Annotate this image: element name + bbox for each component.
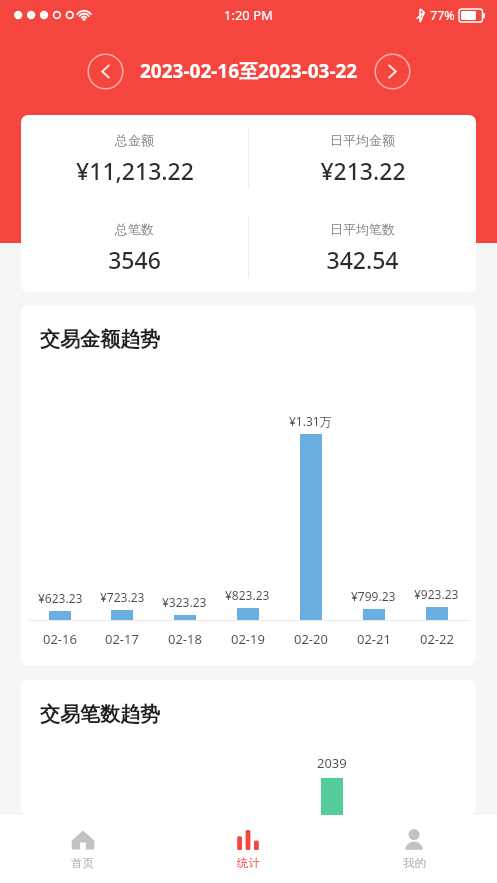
staticText: 总金额 [115,132,154,148]
staticText: 02-18 [168,630,202,648]
button[interactable]: 总金额 [21,115,248,203]
staticText: 02-22 [420,630,454,648]
staticText: 1:20 PM [224,6,273,24]
staticText: 日平均金额 [330,132,395,148]
staticText: ¥799.23 [351,588,396,604]
staticText: 总笔数 [115,221,154,237]
staticText: 交易笔数趋势 [40,702,160,727]
staticText: ¥213.22 [320,155,406,186]
staticText: 首页 [71,856,94,870]
staticText: 77% [430,7,455,24]
staticText: ¥1.31万 [289,413,332,429]
button[interactable]: 日平均笔数 [249,203,476,292]
button[interactable]: 首页 [0,815,165,883]
button[interactable]: 日平均金额 [249,115,476,203]
staticText: ¥323.23 [162,594,207,610]
button[interactable]: 统计 [165,815,331,883]
staticText: 02-16 [43,630,77,648]
staticText: 02-17 [105,630,139,648]
staticText: ¥623.23 [38,590,83,606]
staticText: 342.54 [326,244,399,275]
staticText: 02-19 [231,630,265,648]
staticText: 3546 [108,244,161,275]
staticText: ¥11,213.22 [76,155,194,186]
staticText: 我的 [403,856,426,870]
staticText: 2039 [317,754,347,772]
staticText: ¥923.23 [414,586,459,602]
staticText: ¥723.23 [100,589,145,605]
button[interactable]: Previous period [87,53,124,90]
button[interactable]: 总笔数 [21,203,248,292]
staticText: 统计 [237,856,260,870]
staticText: 02-20 [294,630,328,648]
staticText: 日平均笔数 [330,221,395,237]
button[interactable]: 我的 [331,815,497,883]
button[interactable]: 2023-02-16至2023-03-22 [140,58,358,84]
staticText: ¥823.23 [225,587,270,603]
button[interactable]: Next period [374,53,411,90]
staticText: 交易金额趋势 [40,327,160,352]
staticText: 02-21 [357,630,391,648]
